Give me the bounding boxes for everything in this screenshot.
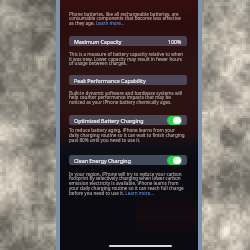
staticText: Optimized Battery Charging — [74, 117, 144, 124]
staticText: it was new. Lower capacity may result in… — [69, 56, 182, 62]
staticText: In your region, iPhone will try to reduc… — [69, 171, 182, 177]
staticText: Phone batteries, like all rechargeable b… — [69, 11, 179, 17]
staticText: your daily charging routine so it can re… — [69, 185, 184, 191]
button[interactable]: Maximum Capacity — [69, 36, 187, 46]
staticText: Built-in dynamic software and hardware s… — [69, 90, 183, 96]
staticText: as they age. Learn more... — [69, 20, 125, 26]
staticText: consumable components that become less e… — [69, 15, 181, 21]
staticText: Peak Performance Capability — [74, 77, 146, 84]
staticText: noticed as your iPhone battery chemicall… — [69, 99, 172, 105]
staticText: past 80% until you need to use it. — [69, 137, 141, 143]
staticText: help counter performance impacts that ma… — [69, 94, 171, 100]
staticText: Maximum Capacity — [74, 38, 122, 45]
staticText: emission electricity is available. iPhon… — [69, 180, 179, 186]
staticText: before you need to use it. Learn more... — [69, 190, 154, 196]
staticText: 100% — [168, 38, 182, 45]
staticText: To reduce battery aging, iPhone learns f… — [69, 127, 175, 133]
staticText: daily charging routine so it can wait to… — [69, 132, 185, 138]
staticText: footprint by selectively charging when l… — [69, 175, 181, 181]
staticText: Clean Energy Charging — [74, 157, 131, 164]
staticText: This is a measure of battery capacity re… — [69, 51, 184, 57]
button[interactable]: Clean Energy Charging — [69, 155, 187, 165]
button[interactable]: Toggle setting — [167, 156, 182, 165]
button[interactable]: Toggle setting — [167, 116, 182, 125]
button[interactable]: Optimized Battery Charging — [69, 115, 187, 125]
button[interactable]: Peak Performance Capability — [69, 75, 187, 85]
staticText: of usage between charges. — [69, 60, 128, 66]
